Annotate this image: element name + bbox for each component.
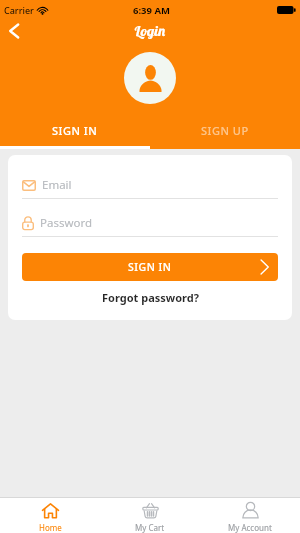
staticText: SIGN IN — [52, 123, 98, 138]
staticText: Carrier — [4, 4, 34, 16]
button[interactable]: My Account — [200, 498, 300, 533]
button[interactable]: Home — [0, 498, 100, 533]
button[interactable]: Back — [1, 18, 27, 44]
button[interactable]: SIGN IN — [22, 253, 278, 281]
staticText: Forgot password? — [102, 290, 199, 305]
staticText: SIGN IN — [128, 260, 172, 274]
staticText: Home — [39, 522, 62, 533]
staticText: My Account — [228, 522, 272, 533]
staticText: Email — [42, 177, 72, 193]
staticText: Password — [40, 215, 93, 231]
staticText: 6:39 AM — [133, 4, 170, 17]
staticText: SIGN UP — [201, 123, 249, 138]
staticText: My Cart — [135, 522, 165, 533]
button[interactable]: Forgot password? — [8, 288, 292, 306]
button[interactable]: SIGN IN — [0, 115, 150, 149]
button[interactable]: SIGN UP — [150, 115, 300, 149]
staticText: Login — [134, 21, 166, 39]
button[interactable]: My Cart — [100, 498, 200, 533]
